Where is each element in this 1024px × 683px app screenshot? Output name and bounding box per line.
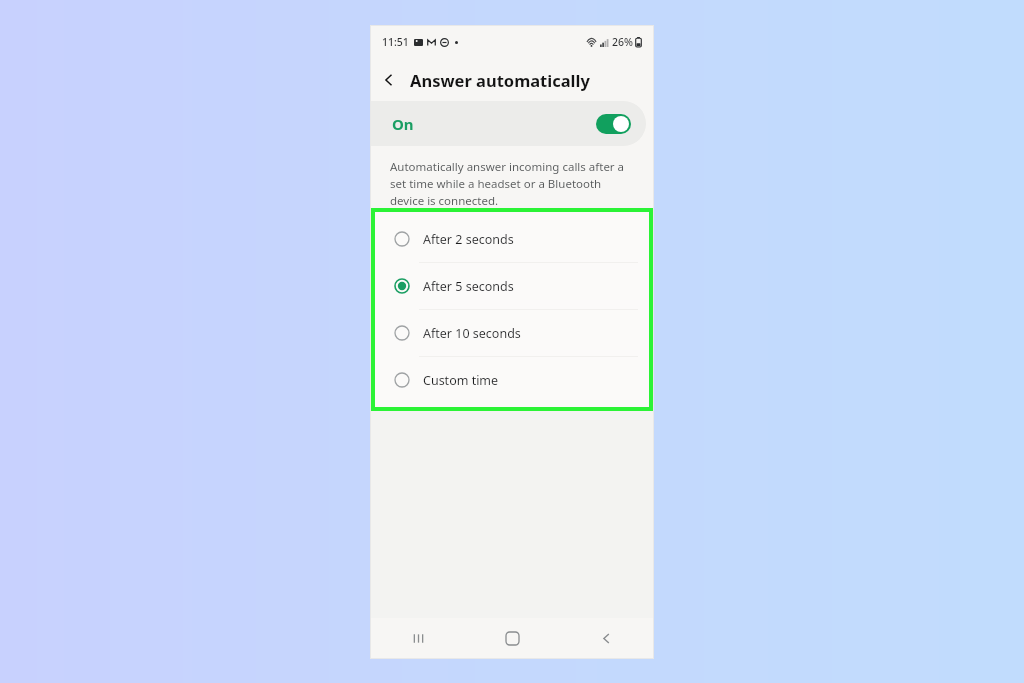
- button[interactable]: Custom time: [375, 357, 649, 403]
- button[interactable]: After 10 seconds: [375, 310, 649, 356]
- button[interactable]: Recent apps: [395, 618, 441, 658]
- staticText: Automatically answer incoming calls afte…: [390, 159, 631, 208]
- staticText: After 5 seconds: [423, 278, 514, 295]
- button[interactable]: Home: [489, 618, 535, 658]
- button[interactable]: After 5 seconds: [375, 263, 649, 309]
- button[interactable]: After 2 seconds: [375, 216, 649, 262]
- staticText: After 10 seconds: [423, 325, 521, 342]
- button[interactable]: Back: [371, 62, 407, 98]
- button[interactable]: On: [371, 101, 646, 146]
- staticText: Custom time: [423, 372, 499, 389]
- staticText: 11:51: [382, 35, 409, 49]
- staticText: 26%: [612, 35, 633, 49]
- staticText: On: [392, 114, 414, 134]
- staticText: After 2 seconds: [423, 231, 514, 248]
- button[interactable]: Back: [583, 618, 629, 658]
- staticText: Answer automatically: [410, 69, 590, 91]
